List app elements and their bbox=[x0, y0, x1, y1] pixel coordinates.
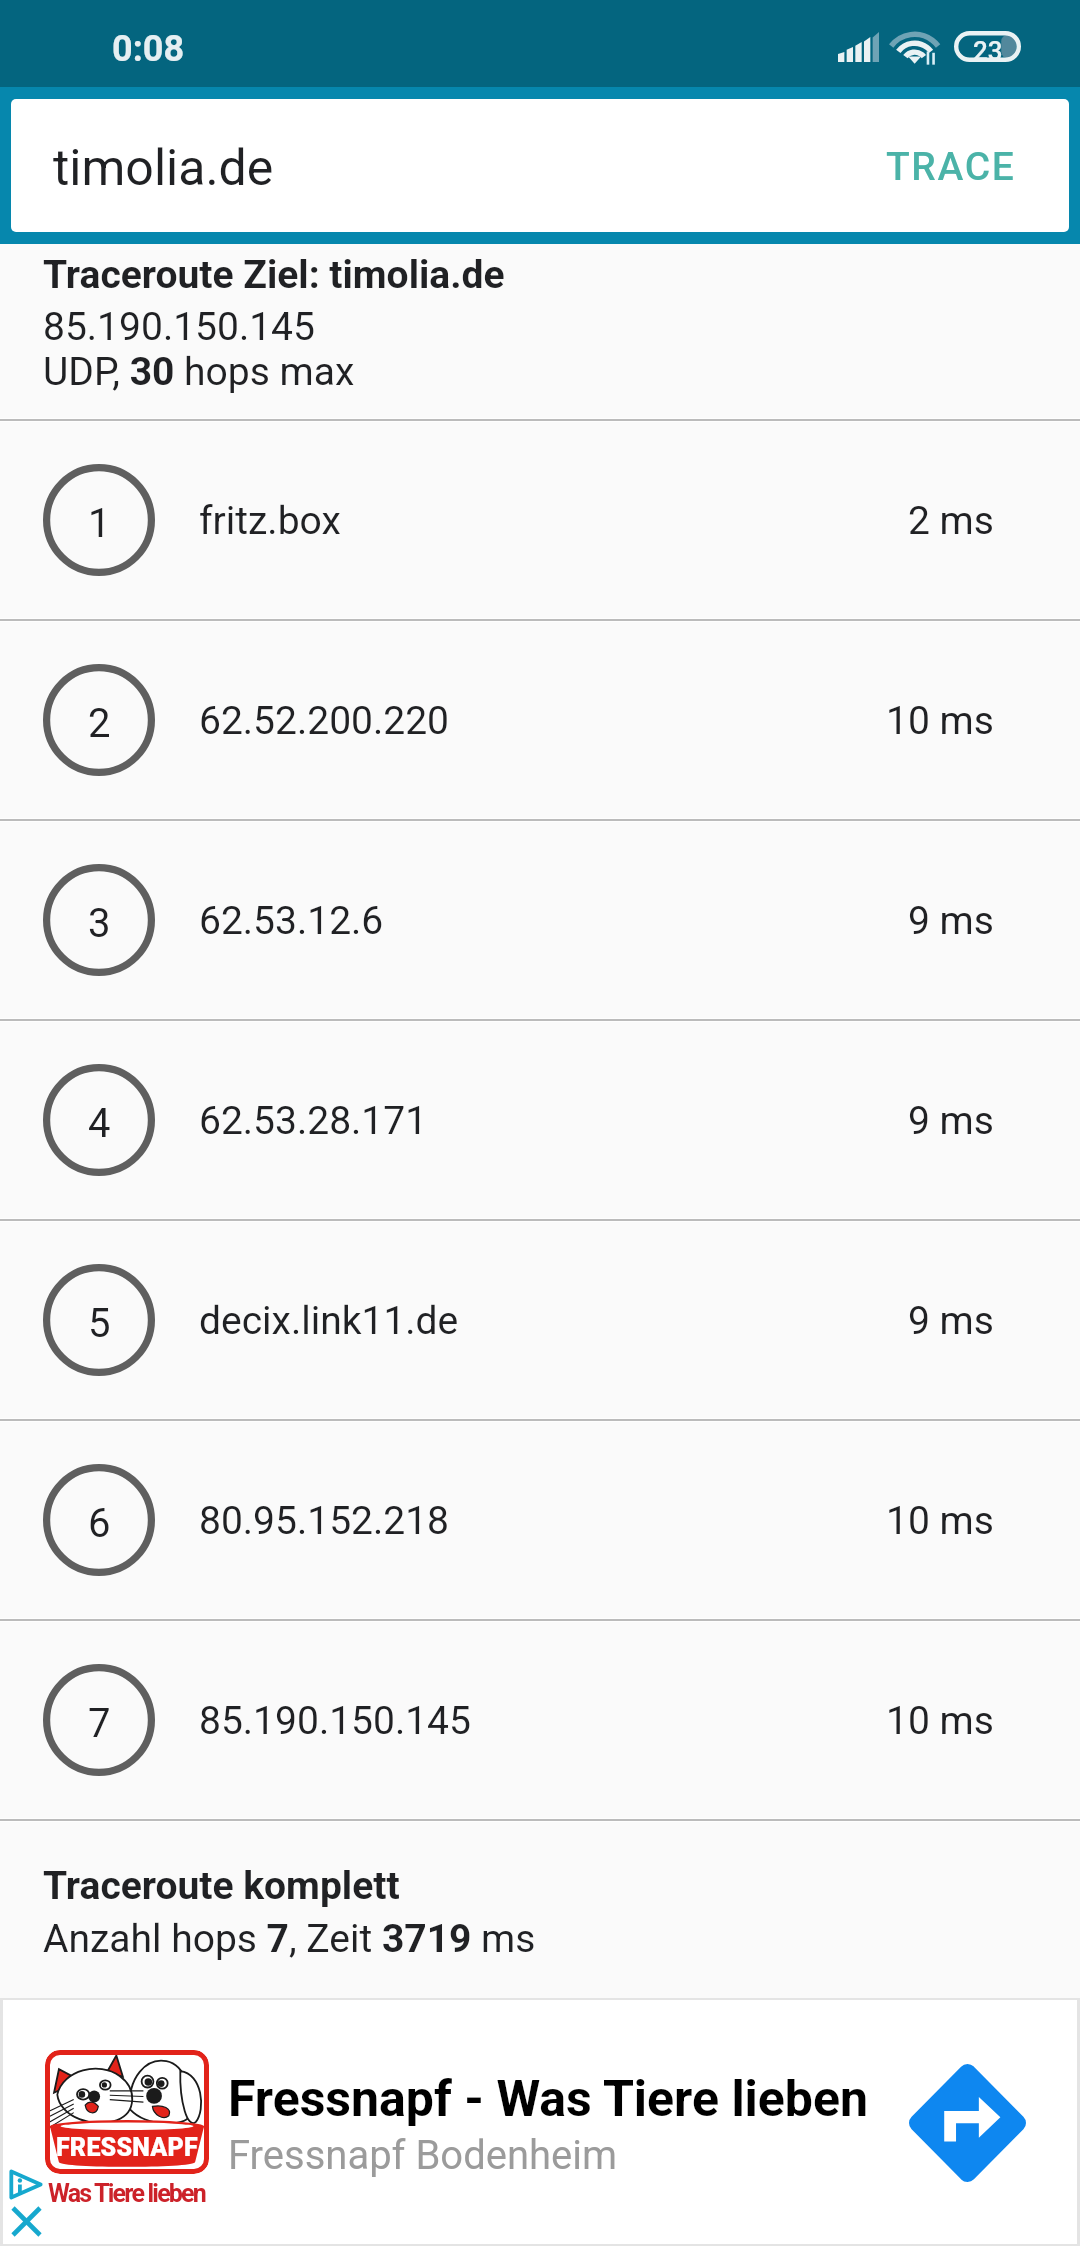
staticText: 2 bbox=[88, 700, 111, 747]
staticText: fritz.box bbox=[199, 498, 908, 543]
button[interactable]: 3 bbox=[0, 822, 1080, 1022]
staticText: 10 ms bbox=[886, 1498, 994, 1543]
button[interactable]: timolia.de bbox=[11, 99, 858, 232]
staticText: Was Tiere lieben bbox=[48, 2179, 206, 2208]
staticText: 2 ms bbox=[908, 498, 994, 543]
button[interactable]: 6 bbox=[0, 1422, 1080, 1622]
staticText: Fressnapf - Was Tiere lieben bbox=[228, 2070, 869, 2129]
staticText: 10 ms bbox=[886, 698, 994, 743]
staticText: 4 bbox=[88, 1100, 111, 1147]
staticText: 62.53.12.6 bbox=[199, 898, 908, 943]
staticText: Traceroute Ziel: timolia.de bbox=[43, 246, 505, 299]
button[interactable]: Ad info bbox=[9, 2170, 42, 2199]
button[interactable]: FRESSNAPF bbox=[3, 2000, 1077, 2244]
staticText: 80.95.152.218 bbox=[199, 1498, 886, 1543]
staticText: 5 bbox=[88, 1300, 111, 1347]
button[interactable]: 4 bbox=[0, 1022, 1080, 1222]
staticText: 1 bbox=[88, 500, 111, 547]
staticText: 85.190.150.145 UDP, 30 hops max bbox=[43, 304, 355, 394]
staticText: Anzahl hops 7, Zeit 3719 ms bbox=[43, 1911, 536, 1963]
staticText: Traceroute komplett bbox=[43, 1853, 400, 1911]
staticText: 7 bbox=[88, 1700, 111, 1747]
staticText: 9 ms bbox=[908, 1298, 994, 1343]
staticText: 62.52.200.220 bbox=[199, 698, 886, 743]
staticText: 9 ms bbox=[908, 1098, 994, 1143]
button[interactable]: 7 bbox=[0, 1622, 1080, 1822]
other: Open advertisement bbox=[907, 2063, 1027, 2183]
button[interactable]: Close ad bbox=[13, 2208, 40, 2235]
staticText: 3 bbox=[88, 900, 111, 947]
staticText: 10 ms bbox=[886, 1698, 994, 1743]
staticText: 0:08 bbox=[112, 28, 185, 70]
button[interactable]: TRACE bbox=[858, 99, 1069, 232]
staticText: 62.53.28.171 bbox=[199, 1098, 908, 1143]
button[interactable]: 2 bbox=[0, 622, 1080, 822]
staticText: 9 ms bbox=[908, 898, 994, 943]
staticText: FRESSNAPF bbox=[56, 2133, 198, 2162]
staticText: Fressnapf Bodenheim bbox=[228, 2132, 618, 2179]
staticText: 6 bbox=[88, 1500, 111, 1547]
button[interactable]: 5 bbox=[0, 1222, 1080, 1422]
staticText: timolia.de bbox=[53, 139, 274, 198]
button[interactable]: 1 bbox=[0, 422, 1080, 622]
staticText: 23 bbox=[973, 36, 1003, 66]
staticText: TRACE bbox=[886, 144, 1016, 190]
staticText: 85.190.150.145 bbox=[199, 1698, 886, 1743]
staticText: decix.link11.de bbox=[199, 1298, 908, 1343]
